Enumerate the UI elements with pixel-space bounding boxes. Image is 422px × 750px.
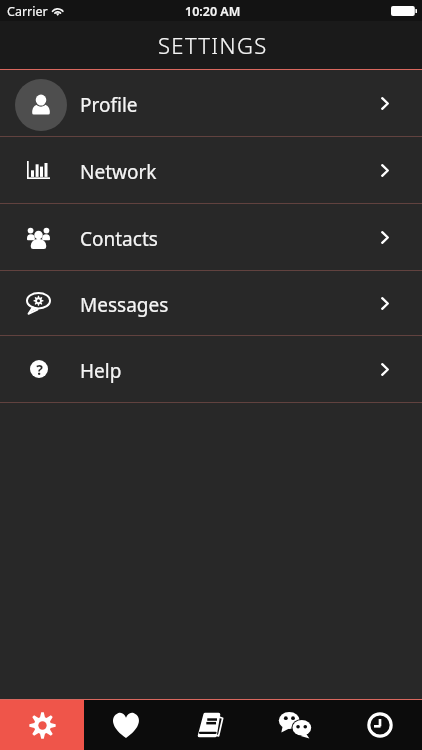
staticText: Messages — [80, 292, 169, 318]
button[interactable]: Profile — [0, 70, 422, 136]
button[interactable]: Library — [168, 700, 252, 750]
button[interactable]: ? — [0, 336, 422, 402]
button[interactable]: Contacts — [0, 204, 422, 270]
button[interactable]: Network — [0, 137, 422, 203]
staticText: Profile — [80, 92, 138, 118]
staticText: Network — [80, 159, 157, 185]
button[interactable]: Recent — [337, 700, 422, 750]
staticText: Contacts — [80, 226, 158, 252]
staticText: Carrier — [7, 3, 48, 20]
button[interactable]: Favorites — [84, 700, 168, 750]
staticText: Help — [80, 358, 122, 384]
button[interactable]: Chats — [252, 700, 337, 750]
staticText: ? — [36, 360, 43, 377]
staticText: 10:20 AM — [185, 3, 241, 20]
button[interactable]: Messages — [0, 271, 422, 335]
staticText: SETTINGS — [158, 30, 268, 60]
button[interactable]: Settings — [0, 700, 84, 750]
